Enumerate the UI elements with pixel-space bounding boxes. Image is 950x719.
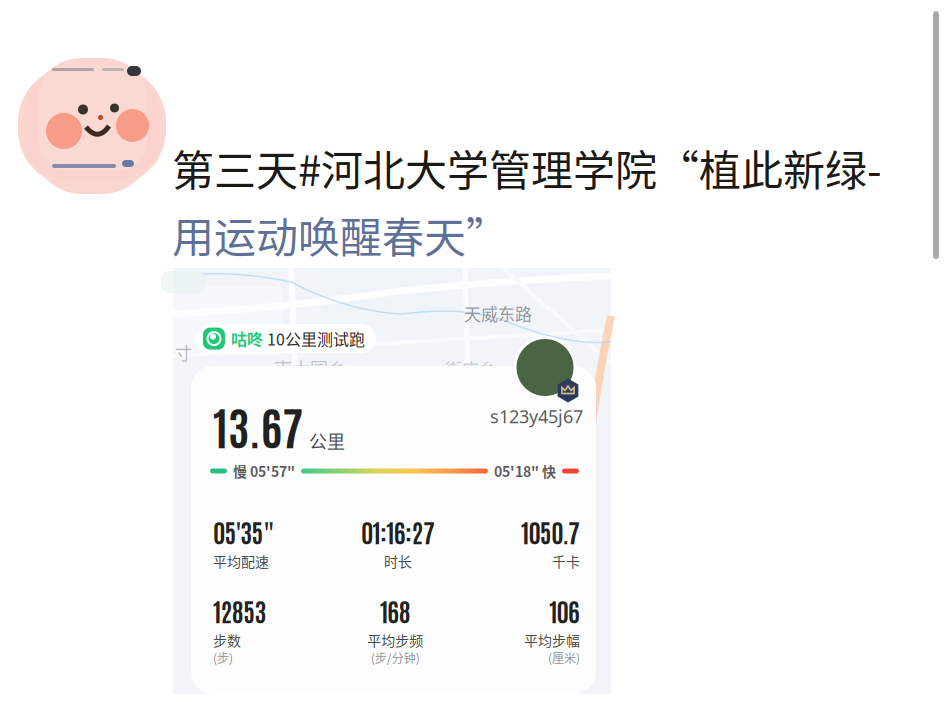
staticText: 千卡 <box>552 551 580 571</box>
staticText: 南大园乡 <box>274 355 346 381</box>
staticText: (步) <box>213 649 233 666</box>
staticText: 咕咚 <box>231 327 263 350</box>
staticText: 168 <box>380 594 411 627</box>
staticText: 05'18" 快 <box>494 461 556 481</box>
staticText: 13.67 <box>213 396 303 455</box>
staticText: 106 <box>549 594 580 627</box>
staticText: 05'35" <box>213 515 275 548</box>
staticText: 用运动唤醒春天” <box>172 204 508 265</box>
button[interactable]: 用运动唤醒春天” <box>172 204 508 265</box>
staticText: 步数 <box>213 630 241 650</box>
staticText: 01:16:27 <box>361 515 435 548</box>
staticText: 天威东路 <box>464 301 532 326</box>
staticText: s123y45j67 <box>490 404 583 428</box>
staticText: 1050.7 <box>521 515 580 548</box>
staticText: 公里 <box>309 428 345 454</box>
staticText: 时长 <box>384 551 412 571</box>
button[interactable]: Running record card <box>173 268 611 694</box>
staticText: 12853 <box>213 594 267 627</box>
staticText: 慢 05'57" <box>233 461 295 481</box>
staticText: (步/分钟) <box>371 649 420 666</box>
staticText: 第三天#河北大学管理学院“植此新绿- <box>172 138 882 197</box>
staticText: 10公里测试跑 <box>267 327 365 350</box>
staticText: 平均步频 <box>367 630 423 650</box>
staticText: 街庄乡 <box>445 356 496 381</box>
staticText: 寸 <box>175 340 192 365</box>
button[interactable]: Profile picture <box>14 52 170 194</box>
staticText: (厘米) <box>548 649 580 666</box>
staticText: 平均步幅 <box>524 630 580 650</box>
staticText: 平均配速 <box>213 551 269 571</box>
